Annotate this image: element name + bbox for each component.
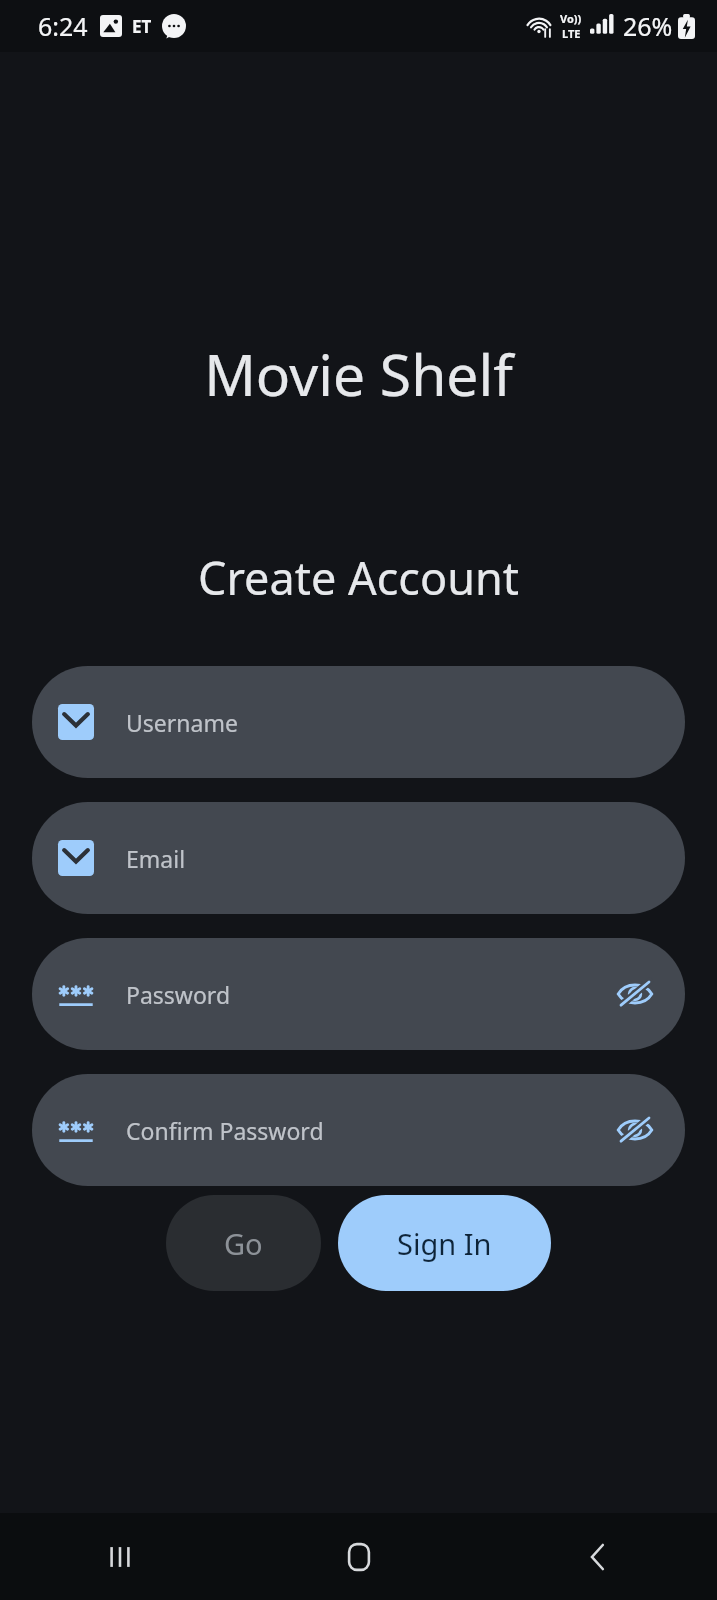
button[interactable]: Username xyxy=(32,666,685,778)
button[interactable]: Recent apps xyxy=(0,1513,239,1600)
staticText: 6:24 xyxy=(38,9,88,43)
staticText: Email xyxy=(126,843,685,874)
staticText: Create Account xyxy=(0,547,717,608)
button[interactable]: Sign In xyxy=(338,1195,551,1291)
staticText: Movie Shelf xyxy=(0,335,717,413)
button[interactable]: Show password xyxy=(607,966,663,1022)
staticText: LTE xyxy=(562,26,581,41)
staticText: 26% xyxy=(623,9,673,43)
staticText: Password xyxy=(126,979,607,1010)
button[interactable]: Back xyxy=(478,1513,717,1600)
staticText: ET xyxy=(132,15,152,38)
button[interactable]: Password xyxy=(32,938,685,1050)
button[interactable]: Show password xyxy=(607,1102,663,1158)
staticText: Go xyxy=(224,1224,263,1263)
staticText: Username xyxy=(126,707,685,738)
staticText: Confirm Password xyxy=(126,1115,607,1146)
button[interactable]: Email xyxy=(32,802,685,914)
button[interactable]: Home xyxy=(239,1513,478,1600)
button[interactable]: Go xyxy=(166,1195,321,1291)
staticText: Vo)) xyxy=(560,11,582,26)
button[interactable]: Confirm Password xyxy=(32,1074,685,1186)
staticText: Sign In xyxy=(397,1224,492,1263)
